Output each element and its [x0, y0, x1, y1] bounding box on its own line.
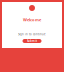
staticText: Submit — [27, 39, 37, 43]
button[interactable]: Submit — [22, 39, 41, 43]
staticText: Welcome — [23, 17, 41, 22]
staticText: Sign in to continue — [18, 32, 46, 36]
